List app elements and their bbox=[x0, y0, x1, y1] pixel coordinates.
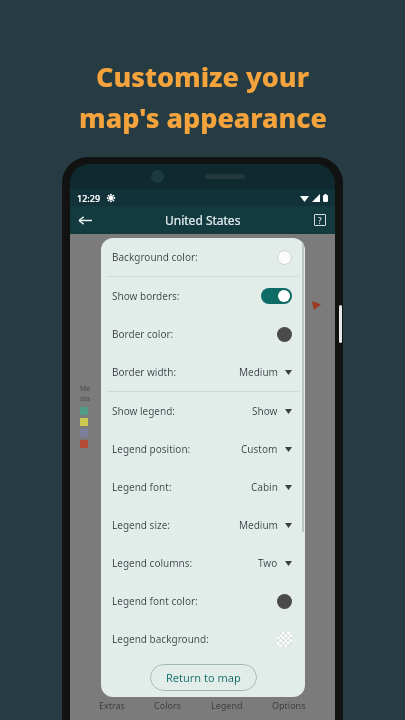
staticText: Extras bbox=[99, 699, 125, 711]
staticText: ? bbox=[318, 215, 322, 226]
button[interactable]: Legend background: bbox=[101, 620, 305, 658]
button[interactable]: Medium bbox=[230, 518, 292, 532]
button[interactable]: Legend font: bbox=[101, 468, 305, 506]
staticText: Legend columns: bbox=[112, 556, 193, 570]
button[interactable]: Help bbox=[310, 210, 330, 230]
button[interactable]: Show bbox=[230, 404, 292, 418]
button[interactable]: Show borders: bbox=[101, 277, 305, 315]
button[interactable]: Background color: bbox=[101, 238, 305, 276]
staticText: Legend font color: bbox=[112, 594, 198, 608]
button[interactable] bbox=[261, 288, 292, 304]
staticText: Two bbox=[258, 556, 278, 570]
staticText: Colors bbox=[154, 699, 181, 711]
staticText: Show borders: bbox=[112, 289, 180, 303]
button[interactable]: Legend columns: bbox=[101, 544, 305, 582]
button[interactable]: Show legend: bbox=[101, 392, 305, 430]
button[interactable]: Return to map bbox=[150, 664, 257, 691]
staticText: Border color: bbox=[112, 327, 174, 341]
button[interactable]: Cabin bbox=[230, 480, 292, 494]
staticText: Border width: bbox=[112, 365, 177, 379]
staticText: Legend background: bbox=[112, 632, 209, 646]
staticText: Legend position: bbox=[112, 442, 191, 456]
staticText: map's appearance bbox=[79, 99, 327, 136]
staticText: Customize your bbox=[96, 58, 309, 95]
staticText: Cabin bbox=[251, 480, 278, 494]
staticText: Custom bbox=[241, 442, 278, 456]
button[interactable]: Legend position: bbox=[101, 430, 305, 468]
staticText: Show legend: bbox=[112, 404, 175, 418]
button[interactable]: Legend size: bbox=[101, 506, 305, 544]
staticText: Me bbox=[80, 384, 91, 394]
button[interactable]: Medium bbox=[230, 365, 292, 379]
staticText: Legend bbox=[211, 699, 243, 711]
staticText: Return to map bbox=[166, 670, 241, 685]
staticText: Medium bbox=[239, 518, 278, 532]
staticText: Legend font: bbox=[112, 480, 172, 494]
staticText: Legend size: bbox=[112, 518, 170, 532]
button[interactable]: Legend font color: bbox=[101, 582, 305, 620]
staticText: United States bbox=[165, 212, 241, 228]
button[interactable]: Border color: bbox=[101, 315, 305, 353]
staticText: Options bbox=[272, 699, 306, 711]
button[interactable]: Border width: bbox=[101, 353, 305, 391]
button[interactable]: Custom bbox=[230, 442, 292, 456]
button[interactable]: Two bbox=[230, 556, 292, 570]
staticText: Background color: bbox=[112, 250, 198, 264]
staticText: Show bbox=[252, 404, 278, 418]
staticText: Medium bbox=[239, 365, 278, 379]
button[interactable]: Back bbox=[74, 209, 96, 231]
staticText: sta bbox=[80, 394, 90, 404]
staticText: 12:29 bbox=[77, 192, 101, 204]
